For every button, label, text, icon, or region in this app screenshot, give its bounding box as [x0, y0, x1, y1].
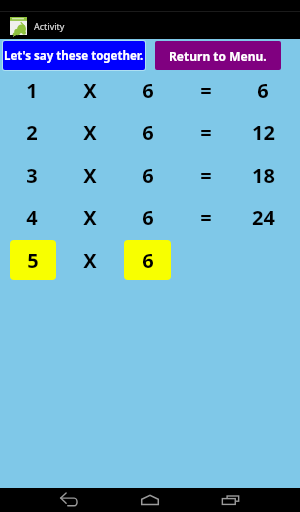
staticText: 6 — [142, 247, 154, 274]
staticText: 24 — [252, 204, 275, 231]
staticText: 6 — [142, 162, 154, 189]
staticText: 6 — [257, 77, 269, 104]
staticText: = — [200, 119, 212, 146]
staticText: Let's say these together. — [4, 48, 144, 64]
staticText: 18 — [252, 162, 275, 189]
staticText: 4 — [26, 204, 38, 231]
staticText: 3 — [26, 162, 38, 189]
button[interactable]: Let's say these together. — [3, 41, 145, 70]
button[interactable]: 5 — [10, 240, 56, 280]
staticText: X — [83, 162, 97, 189]
staticText: = — [200, 162, 212, 189]
staticText: 5 — [27, 247, 39, 274]
staticText: X — [83, 204, 97, 231]
staticText: 6 — [142, 77, 154, 104]
button[interactable]: Recents — [222, 495, 239, 505]
staticText: = — [200, 204, 212, 231]
staticText: X — [83, 247, 97, 274]
staticText: 6 — [142, 204, 154, 231]
button[interactable]: Back — [60, 492, 78, 508]
staticText: 12 — [252, 119, 275, 146]
staticText: Activity — [34, 20, 65, 32]
staticText: X — [83, 77, 97, 104]
button[interactable]: Home — [141, 495, 159, 505]
staticText: = — [200, 77, 212, 104]
staticText: X — [83, 119, 97, 146]
staticText: 2 — [26, 119, 38, 146]
button[interactable]: Return to Menu. — [155, 41, 281, 70]
button[interactable]: 6 — [124, 240, 171, 280]
staticText: Return to Menu. — [169, 48, 267, 64]
staticText: 1 — [26, 77, 38, 104]
staticText: 6 — [142, 119, 154, 146]
